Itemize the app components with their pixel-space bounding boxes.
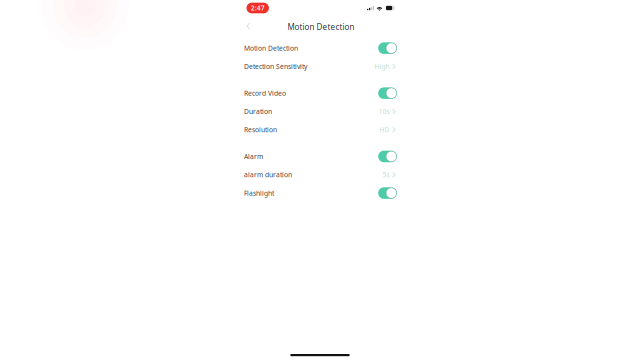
button[interactable]: Detection Sensitivity [236,57,404,76]
staticText: alarm duration [244,170,292,179]
button[interactable]: Record Video [236,84,404,102]
staticText: 2:47 [251,4,265,12]
button[interactable]: Motion Detection [236,39,404,57]
staticText: 10s [378,107,389,116]
staticText: Motion Detection [287,22,354,32]
staticText: Duration [244,107,272,116]
staticText: Alarm [244,152,263,161]
button[interactable]: alarm duration [236,166,404,184]
staticText: Motion Detection [244,44,298,53]
staticText: Resolution [244,125,277,134]
staticText: Flashlight [244,189,274,197]
staticText: High [374,62,389,71]
staticText: HD [379,125,389,134]
staticText: Detection Sensitivity [244,62,307,71]
button[interactable]: Resolution [236,121,404,139]
button[interactable]: Duration [236,102,404,121]
button[interactable]: Flashlight [236,184,404,202]
staticText: 5s [382,170,389,179]
button[interactable]: Alarm [236,147,404,166]
button[interactable]: Back [237,18,254,34]
staticText: Record Video [244,89,286,98]
